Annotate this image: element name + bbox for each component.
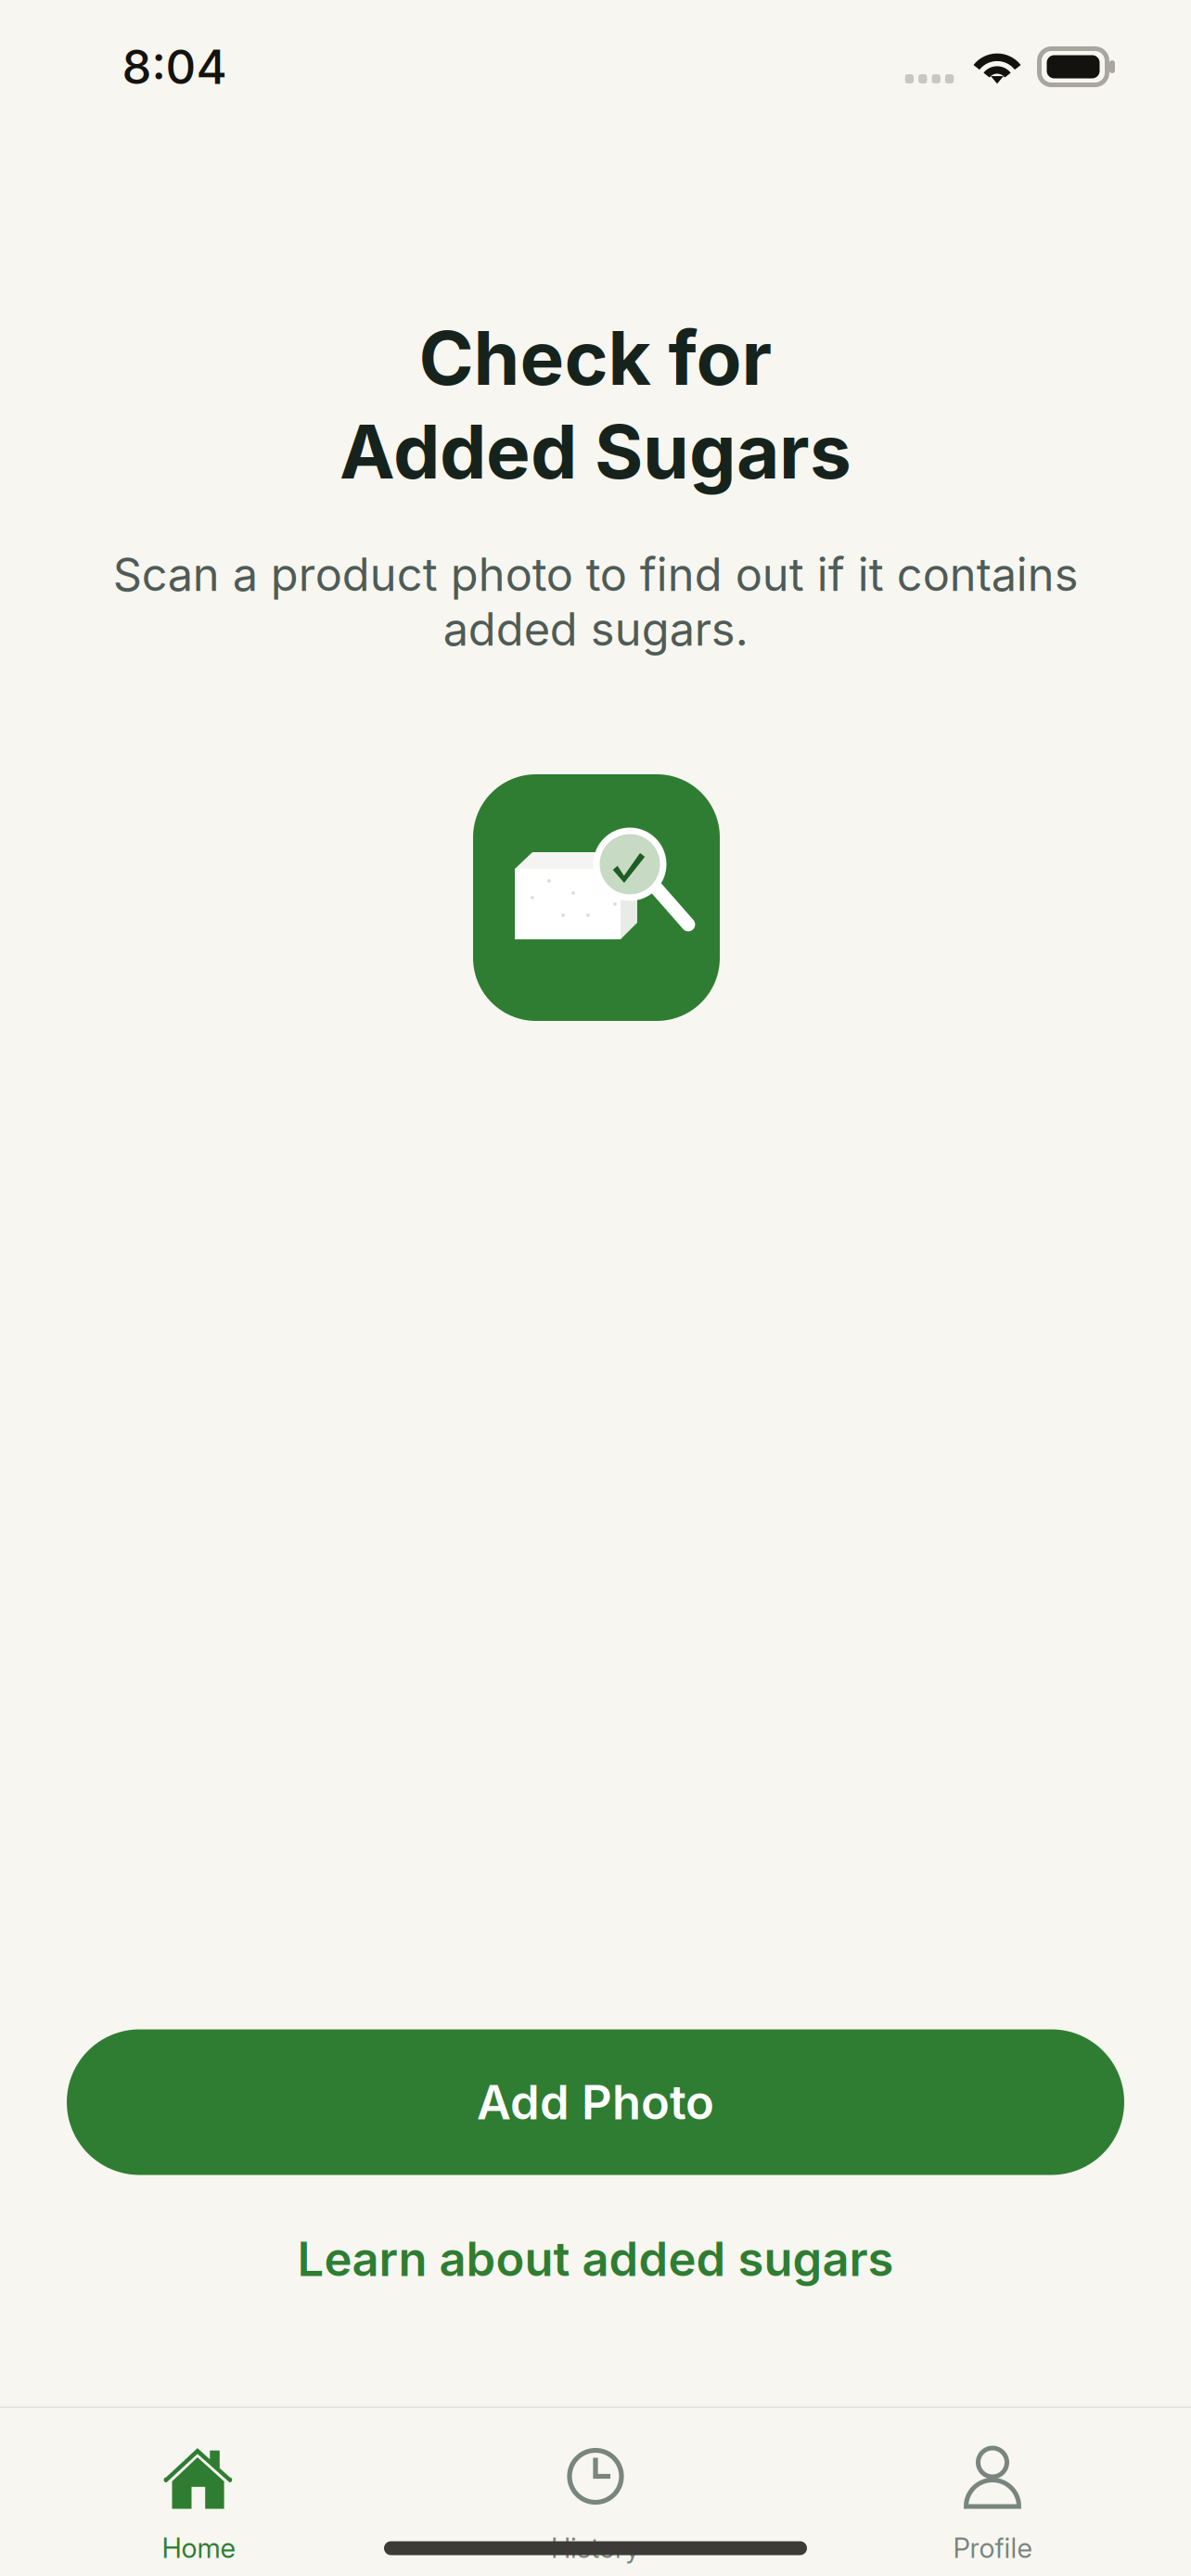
button[interactable]: Learn about added sugars (243, 2214, 948, 2303)
button[interactable]: History (397, 2409, 794, 2576)
staticText: Profile (953, 2531, 1032, 2564)
button[interactable]: Home (0, 2409, 397, 2576)
staticText: Home (162, 2531, 235, 2564)
button[interactable]: Add Photo (67, 2029, 1124, 2175)
staticText: 8:04 (122, 38, 227, 95)
staticText: Added Sugars (339, 407, 852, 496)
staticText: Scan a product photo to find out if it c… (113, 547, 1078, 656)
button[interactable]: Profile (794, 2409, 1191, 2576)
staticText: Add Photo (477, 2074, 714, 2131)
staticText: Check for (419, 313, 772, 403)
staticText: Learn about added sugars (297, 2230, 894, 2287)
staticText: History (551, 2531, 640, 2564)
